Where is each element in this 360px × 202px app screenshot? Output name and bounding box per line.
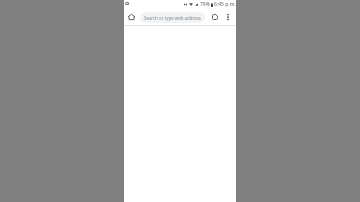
button[interactable]: More options bbox=[222, 11, 234, 23]
staticText: 79% bbox=[200, 1, 210, 8]
staticText: Search or type web address bbox=[144, 15, 201, 21]
staticText: 6:45 p.m. bbox=[214, 1, 236, 8]
button[interactable]: Tabs bbox=[209, 11, 221, 23]
button[interactable]: Search or type web address bbox=[140, 12, 205, 23]
button[interactable]: Home bbox=[125, 11, 137, 23]
